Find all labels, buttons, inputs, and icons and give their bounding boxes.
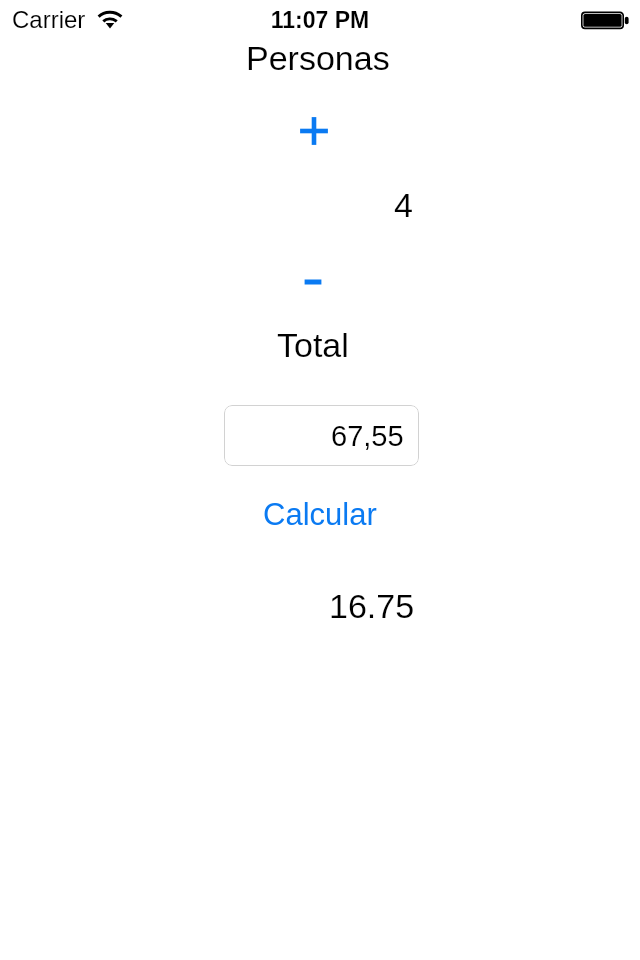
button[interactable]: Remove person (289, 258, 337, 306)
button[interactable]: Total amount (224, 405, 419, 466)
staticText: Calcular (263, 497, 377, 532)
other: Battery full (576, 8, 632, 32)
button[interactable]: Add person (290, 107, 338, 155)
staticText: 11:07 PM (0, 7, 640, 33)
staticText: Carrier (12, 6, 86, 33)
staticText: 4 (394, 186, 413, 224)
staticText: Personas (246, 39, 390, 77)
staticText: Total (277, 326, 349, 364)
staticText: 67,55 (331, 420, 404, 452)
button[interactable]: Calcular (220, 490, 420, 538)
other: Wi-Fi (94, 6, 128, 32)
staticText: 16.75 (329, 587, 415, 625)
